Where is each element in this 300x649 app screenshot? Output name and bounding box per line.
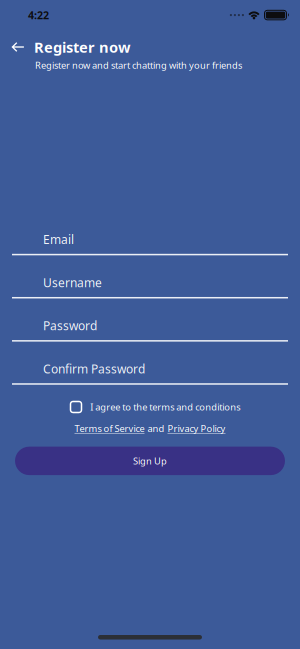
button[interactable]: I agree to the terms and conditions <box>65 401 235 413</box>
staticText: Terms of Service <box>74 422 144 435</box>
button[interactable]: Terms of Service <box>74 422 144 435</box>
staticText: Confirm Password <box>43 361 145 377</box>
staticText: I agree to the terms and conditions <box>90 401 240 413</box>
staticText: and <box>147 422 164 435</box>
button[interactable]: Privacy Policy <box>167 422 225 435</box>
staticText: Sign Up <box>133 455 167 467</box>
staticText: Register now <box>34 37 131 57</box>
staticText: Email <box>43 231 74 247</box>
button[interactable]: Back <box>6 35 30 59</box>
button[interactable]: Sign Up <box>0 447 300 475</box>
staticText: Register now and start chatting with you… <box>35 59 242 71</box>
staticText: Username <box>43 274 102 290</box>
staticText: 4:22 <box>28 8 49 22</box>
staticText: Privacy Policy <box>167 422 225 435</box>
staticText: Password <box>43 318 97 334</box>
